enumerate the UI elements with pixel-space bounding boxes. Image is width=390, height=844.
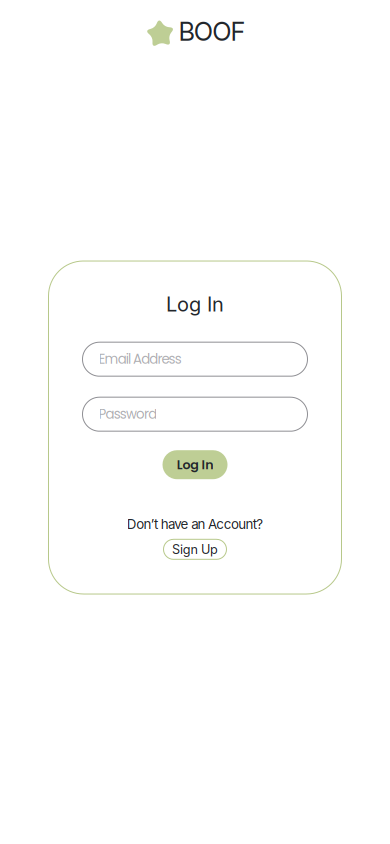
staticText: BOOF [178,16,246,47]
staticText: Email Address [98,350,182,369]
button[interactable]: Sign Up [163,539,226,559]
button[interactable]: Log In [162,450,227,479]
staticText: Password [98,405,157,424]
staticText: Sign Up [172,542,218,557]
staticText: Don’t have an Account? [127,516,263,532]
staticText: Log In [177,456,213,473]
staticText: Log In [166,292,224,316]
